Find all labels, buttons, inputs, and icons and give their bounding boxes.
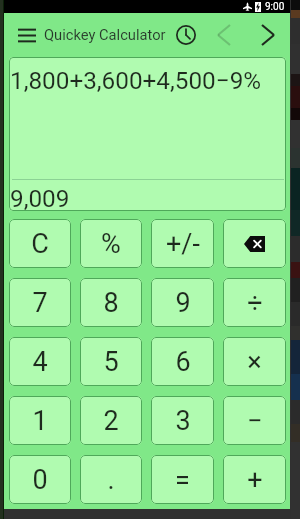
button[interactable]: Menu <box>13 13 41 57</box>
button[interactable]: 7 <box>9 278 71 327</box>
button[interactable]: + <box>223 455 286 504</box>
button[interactable]: History <box>172 21 200 49</box>
staticText: . <box>107 464 115 496</box>
staticText: 9,009 <box>10 184 70 211</box>
button[interactable]: C <box>9 219 71 268</box>
staticText: 0 <box>32 464 48 496</box>
staticText: 5 <box>103 346 119 378</box>
button[interactable]: 1 <box>9 396 71 445</box>
staticText: 3 <box>175 405 191 437</box>
button[interactable]: × <box>223 337 286 386</box>
button[interactable]: 9 <box>151 278 214 327</box>
staticText: 2 <box>103 405 119 437</box>
staticText: 4 <box>32 346 48 378</box>
staticText: 7 <box>32 287 48 319</box>
staticText: 6 <box>175 346 191 378</box>
staticText: = <box>175 464 190 496</box>
staticText: 9:00 <box>265 1 285 13</box>
button[interactable]: Next <box>254 21 282 49</box>
staticText: − <box>247 405 263 437</box>
staticText: × <box>247 346 262 378</box>
staticText: +/- <box>166 228 200 260</box>
staticText: ÷ <box>247 287 263 319</box>
staticText: 1 <box>32 405 48 437</box>
button[interactable]: . <box>80 455 142 504</box>
button[interactable]: 6 <box>151 337 214 386</box>
button[interactable]: = <box>151 455 214 504</box>
button[interactable]: 5 <box>80 337 142 386</box>
staticText: % <box>101 228 121 260</box>
staticText: + <box>247 464 263 496</box>
button[interactable]: % <box>80 219 142 268</box>
button[interactable]: 4 <box>9 337 71 386</box>
button[interactable]: Previous <box>210 21 238 49</box>
button[interactable]: ÷ <box>223 278 286 327</box>
button[interactable]: − <box>223 396 286 445</box>
button[interactable]: 0 <box>9 455 71 504</box>
staticText: C <box>31 228 49 260</box>
staticText: Quickey Calculator <box>44 26 166 43</box>
button[interactable]: Backspace <box>223 219 286 268</box>
button[interactable]: 8 <box>80 278 142 327</box>
button[interactable]: 2 <box>80 396 142 445</box>
staticText: 8 <box>103 287 119 319</box>
button[interactable]: 3 <box>151 396 214 445</box>
staticText: 1,800+3,600+4,500−9% <box>10 66 262 94</box>
staticText: 9 <box>175 287 191 319</box>
button[interactable]: +/- <box>151 219 214 268</box>
